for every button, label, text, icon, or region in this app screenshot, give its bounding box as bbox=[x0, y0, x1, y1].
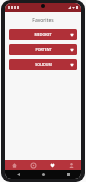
button[interactable]: Back bbox=[5, 170, 31, 179]
button[interactable]: Recents bbox=[56, 170, 81, 179]
button[interactable]: Home bbox=[31, 170, 56, 179]
button[interactable]: Profile bbox=[62, 160, 81, 170]
button[interactable]: Favorites bbox=[43, 160, 62, 170]
button[interactable]: MEDOKET bbox=[9, 29, 77, 40]
staticText: SOLIDUM bbox=[35, 62, 52, 67]
button[interactable]: PORTENT bbox=[9, 44, 77, 55]
staticText: PORTENT bbox=[35, 47, 52, 52]
button[interactable]: Home bbox=[5, 160, 24, 170]
staticText: Favorites bbox=[5, 17, 81, 24]
button[interactable]: SOLIDUM bbox=[9, 59, 77, 70]
staticText: MEDOKET bbox=[34, 32, 52, 37]
button[interactable]: Explore bbox=[24, 160, 43, 170]
